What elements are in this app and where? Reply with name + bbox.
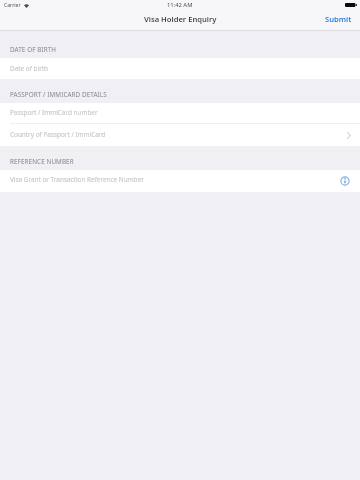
- staticText: REFERENCE NUMBER: [10, 157, 74, 166]
- button[interactable]: Visa Grant or Transaction Reference Numb…: [0, 170, 360, 192]
- button[interactable]: Passport / ImmiCard number: [0, 103, 360, 124]
- staticText: Carrier: [4, 2, 21, 9]
- staticText: PASSPORT / IMMICARD DETAILS: [10, 90, 107, 99]
- staticText: Date of birth: [10, 64, 49, 73]
- staticText: Visa Grant or Transaction Reference Numb…: [10, 175, 144, 184]
- button[interactable]: Country of Passport / ImmiCard: [0, 124, 360, 146]
- staticText: Submit: [325, 14, 352, 24]
- staticText: Passport / ImmiCard number: [10, 108, 98, 117]
- staticText: Country of Passport / ImmiCard: [10, 130, 106, 139]
- staticText: Visa Holder Enquiry: [144, 14, 217, 24]
- button[interactable]: Date of birth: [0, 58, 360, 79]
- staticText: 11:42 AM: [167, 1, 193, 9]
- button[interactable]: Information about reference number: [334, 173, 360, 189]
- button[interactable]: Submit: [313, 11, 360, 27]
- button[interactable]: Choose country of passport: [341, 128, 360, 143]
- staticText: DATE OF BIRTH: [10, 45, 57, 54]
